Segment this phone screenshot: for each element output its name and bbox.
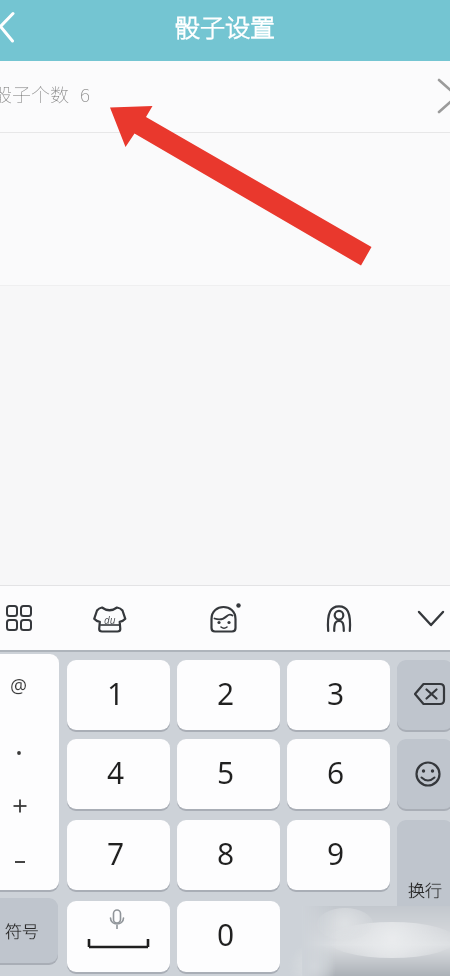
- staticText: 6: [327, 752, 345, 793]
- button[interactable]: 0: [177, 901, 280, 972]
- button[interactable]: [312, 598, 356, 642]
- button[interactable]: 6: [287, 739, 390, 809]
- staticText: 4: [107, 752, 125, 793]
- button[interactable]: 1: [67, 660, 170, 730]
- staticText: 6: [80, 80, 90, 108]
- staticText: 骰子设置: [175, 8, 276, 44]
- staticText: 2: [217, 673, 235, 714]
- staticText: du: [104, 613, 116, 627]
- staticText: 9: [327, 833, 345, 874]
- button[interactable]: [0, 898, 58, 963]
- staticText: @: [10, 673, 28, 699]
- staticText: 换行: [408, 877, 442, 902]
- staticText: 符号: [5, 918, 39, 943]
- button[interactable]: 9: [287, 820, 390, 890]
- button[interactable]: [397, 739, 450, 809]
- staticText: 7: [107, 833, 125, 874]
- button[interactable]: [0, 8, 40, 53]
- button[interactable]: [2, 598, 46, 642]
- staticText: 3: [327, 673, 345, 714]
- button[interactable]: [0, 654, 59, 890]
- staticText: 骰子个数: [0, 80, 70, 108]
- staticText: 8: [217, 833, 235, 874]
- staticText: 0: [217, 914, 235, 955]
- button[interactable]: [201, 598, 245, 642]
- button[interactable]: 7: [67, 820, 170, 890]
- button[interactable]: 2: [177, 660, 280, 730]
- button[interactable]: [88, 598, 132, 642]
- button[interactable]: 5: [177, 739, 280, 809]
- staticText: 1: [107, 673, 125, 714]
- button[interactable]: 骰子个数: [0, 61, 450, 132]
- staticText: 5: [217, 752, 235, 793]
- button[interactable]: [397, 820, 450, 972]
- button[interactable]: 3: [287, 660, 390, 730]
- button[interactable]: [409, 598, 450, 642]
- button[interactable]: 8: [177, 820, 280, 890]
- button[interactable]: 4: [67, 739, 170, 809]
- button[interactable]: [67, 901, 170, 972]
- button[interactable]: [397, 660, 450, 730]
